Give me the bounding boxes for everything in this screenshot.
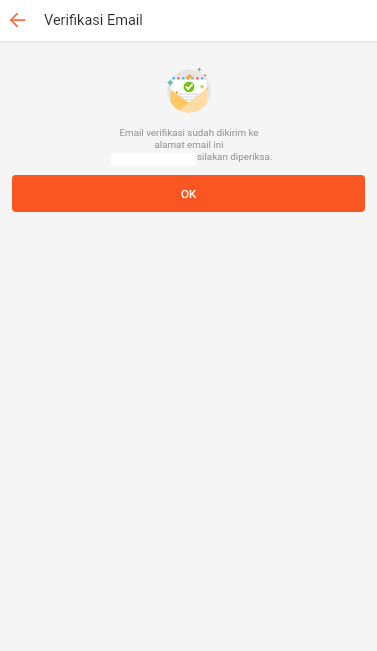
staticText: silakan diperiksa. bbox=[197, 151, 273, 162]
staticText: Verifikasi Email bbox=[44, 12, 143, 29]
staticText: Email verifikasi sudah dikirim ke alamat… bbox=[119, 127, 259, 151]
button[interactable]: Back bbox=[0, 3, 35, 38]
button[interactable]: OK bbox=[12, 175, 365, 212]
staticText: OK bbox=[181, 187, 197, 200]
